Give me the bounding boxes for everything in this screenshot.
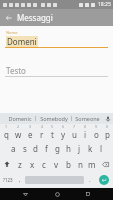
staticText: l bbox=[100, 143, 103, 154]
button[interactable]: z bbox=[14, 156, 26, 172]
staticText: . bbox=[89, 176, 91, 184]
staticText: 8 bbox=[84, 124, 87, 129]
button[interactable]: 1 bbox=[0, 124, 12, 140]
button[interactable]: Voice input bbox=[102, 113, 113, 124]
button[interactable]: Shift bbox=[0, 156, 14, 172]
button[interactable]: 6 bbox=[58, 124, 69, 140]
staticText: Somebody bbox=[40, 115, 68, 122]
staticText: 6 bbox=[62, 124, 65, 129]
button[interactable]: c bbox=[38, 156, 50, 172]
button[interactable]: Domeni bbox=[0, 36, 113, 47]
button[interactable]: b bbox=[62, 156, 74, 172]
button[interactable]: a bbox=[7, 140, 19, 156]
button[interactable]: f bbox=[41, 140, 52, 156]
staticText: b bbox=[66, 159, 71, 170]
staticText: s bbox=[23, 143, 27, 154]
button[interactable]: Somebody bbox=[36, 113, 71, 124]
staticText: d bbox=[33, 143, 38, 154]
staticText: n bbox=[78, 159, 83, 170]
staticText: 7 bbox=[73, 124, 76, 129]
button[interactable]: Back bbox=[0, 9, 17, 26]
staticText: x bbox=[30, 159, 35, 170]
staticText: g bbox=[55, 143, 60, 154]
button[interactable]: Testo bbox=[0, 64, 113, 76]
staticText: f bbox=[45, 143, 48, 154]
button[interactable]: Home bbox=[51, 188, 63, 200]
button[interactable]: 5 bbox=[47, 124, 58, 140]
staticText: 18:25 bbox=[98, 1, 111, 8]
button[interactable]: d bbox=[30, 140, 41, 156]
staticText: Someone bbox=[75, 115, 100, 122]
button[interactable]: Recents bbox=[82, 188, 94, 200]
staticText: k bbox=[88, 143, 93, 154]
button[interactable]: , bbox=[15, 172, 24, 188]
staticText: v bbox=[54, 159, 59, 170]
staticText: , bbox=[19, 176, 21, 184]
staticText: ?123 bbox=[3, 177, 13, 183]
staticText: r bbox=[40, 129, 44, 140]
staticText: 4 bbox=[41, 124, 44, 129]
staticText: Nome bbox=[6, 30, 18, 35]
staticText: Domenic bbox=[8, 115, 32, 122]
button[interactable]: l bbox=[96, 140, 107, 156]
button[interactable]: Back bbox=[19, 188, 31, 200]
staticText: p bbox=[105, 129, 110, 140]
button[interactable]: s bbox=[19, 140, 30, 156]
button[interactable]: 9 bbox=[91, 124, 102, 140]
button[interactable]: Backspace bbox=[98, 156, 113, 172]
staticText: 9 bbox=[95, 124, 98, 129]
button[interactable]: 2 bbox=[12, 124, 24, 140]
staticText: t bbox=[51, 129, 54, 140]
button[interactable]: 8 bbox=[80, 124, 91, 140]
staticText: q bbox=[4, 129, 9, 140]
button[interactable]: ?123 bbox=[0, 172, 15, 188]
staticText: 3 bbox=[29, 124, 32, 129]
staticText: 1 bbox=[5, 124, 8, 129]
button[interactable]: Domenic bbox=[4, 113, 35, 124]
staticText: i bbox=[84, 129, 87, 140]
button[interactable]: 3 bbox=[24, 124, 36, 140]
button[interactable]: . bbox=[85, 172, 94, 188]
staticText: 2 bbox=[17, 124, 20, 129]
staticText: j bbox=[78, 143, 81, 154]
button[interactable]: k bbox=[85, 140, 96, 156]
staticText: w bbox=[15, 129, 22, 140]
staticText: 0 bbox=[106, 124, 109, 129]
staticText: m bbox=[88, 159, 96, 170]
button[interactable]: Enter bbox=[99, 175, 109, 185]
button[interactable]: 4 bbox=[36, 124, 47, 140]
button[interactable]: v bbox=[50, 156, 62, 172]
staticText: Testo bbox=[6, 65, 26, 76]
staticText: a bbox=[11, 143, 16, 154]
button[interactable]: 7 bbox=[69, 124, 80, 140]
staticText: c bbox=[42, 159, 46, 170]
button[interactable]: m bbox=[86, 156, 98, 172]
staticText: Messaggi bbox=[17, 12, 53, 23]
button[interactable]: n bbox=[74, 156, 86, 172]
button[interactable]: Someone bbox=[72, 113, 102, 124]
button[interactable]: x bbox=[26, 156, 38, 172]
button[interactable]: 0 bbox=[102, 124, 113, 140]
staticText: z bbox=[18, 159, 22, 170]
button[interactable]: g bbox=[52, 140, 63, 156]
staticText: Domeni bbox=[7, 36, 37, 47]
button[interactable]: h bbox=[63, 140, 74, 156]
staticText: y bbox=[61, 129, 66, 140]
staticText: u bbox=[72, 129, 77, 140]
button[interactable]: j bbox=[74, 140, 85, 156]
staticText: h bbox=[66, 143, 71, 154]
staticText: 5 bbox=[51, 124, 54, 129]
staticText: o bbox=[94, 129, 99, 140]
staticText: e bbox=[28, 129, 33, 140]
